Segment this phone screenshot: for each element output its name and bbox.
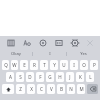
staticText: R xyxy=(33,62,36,68)
button[interactable]: L xyxy=(86,72,94,82)
button[interactable]: B xyxy=(57,84,65,94)
button[interactable]: D xyxy=(26,72,34,82)
button[interactable]: J xyxy=(66,72,74,82)
button[interactable]: P xyxy=(90,60,98,70)
button[interactable]: G xyxy=(46,72,54,82)
button[interactable]: R xyxy=(30,60,38,70)
staticText: Z xyxy=(19,86,22,92)
button[interactable]: C xyxy=(37,84,45,94)
staticText: Yes xyxy=(80,51,87,57)
button[interactable]: T xyxy=(40,60,48,70)
staticText: D xyxy=(28,74,32,80)
button[interactable]: O xyxy=(80,60,88,70)
button[interactable]: H xyxy=(56,72,64,82)
staticText: W xyxy=(12,62,17,68)
button[interactable]: GIF xyxy=(54,38,64,48)
button[interactable]: Shift xyxy=(2,84,14,94)
button[interactable]: K xyxy=(76,72,84,82)
staticText: Y xyxy=(53,62,56,68)
staticText: C xyxy=(40,86,43,92)
button[interactable]: F xyxy=(36,72,44,82)
button[interactable]: Z xyxy=(16,84,25,94)
staticText: V xyxy=(50,86,53,92)
staticText: L xyxy=(89,74,92,80)
staticText: I xyxy=(73,62,75,68)
staticText: Q xyxy=(4,62,8,68)
button[interactable]: W xyxy=(11,60,18,70)
staticText: N xyxy=(69,86,73,92)
button[interactable]: Close xyxy=(85,38,95,48)
staticText: J xyxy=(69,74,71,80)
staticText: G xyxy=(48,74,52,80)
staticText: K xyxy=(79,74,82,80)
button[interactable]: Text style xyxy=(22,38,32,48)
button[interactable]: Okay xyxy=(0,49,32,58)
button[interactable]: U xyxy=(60,60,68,70)
staticText: H xyxy=(58,74,62,80)
staticText: P xyxy=(93,62,96,68)
button[interactable]: V xyxy=(47,84,55,94)
button[interactable]: Emoji xyxy=(38,38,48,48)
button[interactable]: Yes xyxy=(67,49,100,58)
staticText: E xyxy=(23,62,26,68)
staticText: M xyxy=(79,86,84,92)
button[interactable]: A xyxy=(6,72,14,82)
button[interactable]: Y xyxy=(50,60,58,70)
staticText: X xyxy=(30,86,33,92)
button[interactable]: Settings xyxy=(70,38,80,48)
staticText: O xyxy=(82,62,86,68)
button[interactable]: X xyxy=(27,84,35,94)
staticText: U xyxy=(62,62,66,68)
button[interactable]: I xyxy=(70,60,78,70)
staticText: S xyxy=(19,74,22,80)
button[interactable]: N xyxy=(67,84,75,94)
button[interactable]: Q xyxy=(2,60,9,70)
button[interactable]: S xyxy=(16,72,24,82)
staticText: F xyxy=(39,74,42,80)
button[interactable]: M xyxy=(77,84,85,94)
staticText: B xyxy=(60,86,63,92)
button[interactable]: Clipboard xyxy=(6,38,16,48)
button[interactable]: I xyxy=(33,49,66,58)
button[interactable]: Backspace xyxy=(87,84,98,94)
staticText: Okay xyxy=(11,51,21,57)
staticText: A xyxy=(9,74,12,80)
staticText: T xyxy=(43,62,46,68)
staticText: I xyxy=(49,51,51,57)
button[interactable]: E xyxy=(20,60,28,70)
